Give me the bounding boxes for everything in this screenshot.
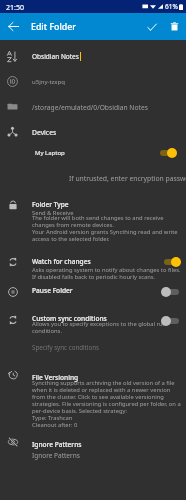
staticText: u5jny-tzxpq (32, 78, 65, 86)
button[interactable]: Specify sync conditions (0, 340, 186, 353)
staticText: /storage/emulated/0/Obsidian Notes (32, 103, 148, 112)
button[interactable]: Toggle on (161, 256, 182, 267)
staticText: Folder Type (32, 200, 69, 209)
staticText: File Versioning (32, 373, 79, 382)
staticText: Edit Folder (31, 21, 77, 33)
staticText: Specify sync conditions (32, 343, 99, 351)
button[interactable]: Obsidian Notes (0, 47, 186, 65)
button[interactable]: Navigate up (2, 13, 24, 40)
staticText: If untrusted, enter encryption password (69, 174, 186, 183)
button[interactable]: Pause Folder (0, 284, 186, 300)
staticText: 61% (165, 2, 178, 11)
staticText: Ignore Patterns (32, 440, 82, 449)
button[interactable]: File Versioning (0, 371, 186, 437)
button[interactable]: Delete (163, 13, 185, 40)
staticText: My Laptop (35, 149, 65, 157)
button[interactable]: Toggle on (157, 147, 178, 158)
staticText: Custom sync conditions (32, 314, 107, 323)
staticText: Watch for changes (32, 257, 91, 266)
staticText: Syncthing supports archiving the old ver… (32, 379, 182, 429)
button[interactable]: Devices (0, 124, 186, 140)
staticText: Ignore Patterns (32, 451, 80, 460)
staticText: Obsidian Notes (32, 52, 79, 61)
button[interactable]: /storage/emulated/0/Obsidian Notes (0, 99, 186, 115)
button[interactable]: Custom sync conditions (0, 312, 186, 339)
button[interactable]: Folder Type (0, 198, 186, 249)
button[interactable]: My Laptop (0, 145, 186, 160)
button[interactable]: Watch for changes (0, 255, 186, 284)
button[interactable]: u5jny-tzxpq (0, 73, 186, 90)
button[interactable]: Ignore Patterns (0, 438, 186, 464)
staticText: Send & Receive (32, 209, 74, 217)
staticText: The folder will both send changes to and… (32, 214, 182, 243)
staticText: Asks operating system to notify about ch… (32, 266, 181, 281)
staticText: Devices (32, 128, 57, 137)
button[interactable]: Toggle off (161, 315, 182, 326)
staticText: 21:50 (6, 3, 24, 13)
staticText: Pause Folder (32, 286, 73, 295)
button[interactable]: Save (141, 13, 163, 40)
staticText: Allows you to specify exceptions to the … (32, 320, 182, 335)
button[interactable]: Toggle off (161, 286, 182, 297)
